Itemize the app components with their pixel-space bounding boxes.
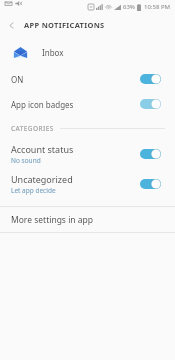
button[interactable]: Toggle — [140, 179, 161, 189]
staticText: 10:58 PM — [144, 3, 171, 11]
button[interactable]: Inbox — [0, 37, 175, 67]
staticText: Account status — [11, 143, 74, 155]
staticText: Uncategorized — [11, 173, 73, 185]
button[interactable]: More settings in app — [0, 207, 175, 232]
staticText: App icon badges — [11, 99, 74, 110]
staticText: APP NOTIFICATIONS — [24, 20, 105, 30]
staticText: More settings in app — [11, 214, 94, 226]
button[interactable]: Toggle — [140, 99, 161, 109]
staticText: CATEGORIES — [11, 124, 54, 133]
button[interactable]: ON — [0, 67, 175, 91]
button[interactable]: Toggle — [140, 149, 161, 159]
staticText: 63% — [123, 3, 135, 11]
staticText: Let app decide — [11, 186, 56, 195]
button[interactable]: App icon badges — [0, 91, 175, 117]
staticText: ON — [11, 74, 24, 85]
staticText: Inbox — [42, 47, 64, 58]
staticText: No sound — [11, 156, 41, 165]
button[interactable]: Back — [0, 14, 22, 36]
button[interactable]: Uncategorized — [0, 169, 175, 199]
button[interactable]: Account status — [0, 139, 175, 169]
button[interactable]: Toggle — [140, 74, 161, 84]
